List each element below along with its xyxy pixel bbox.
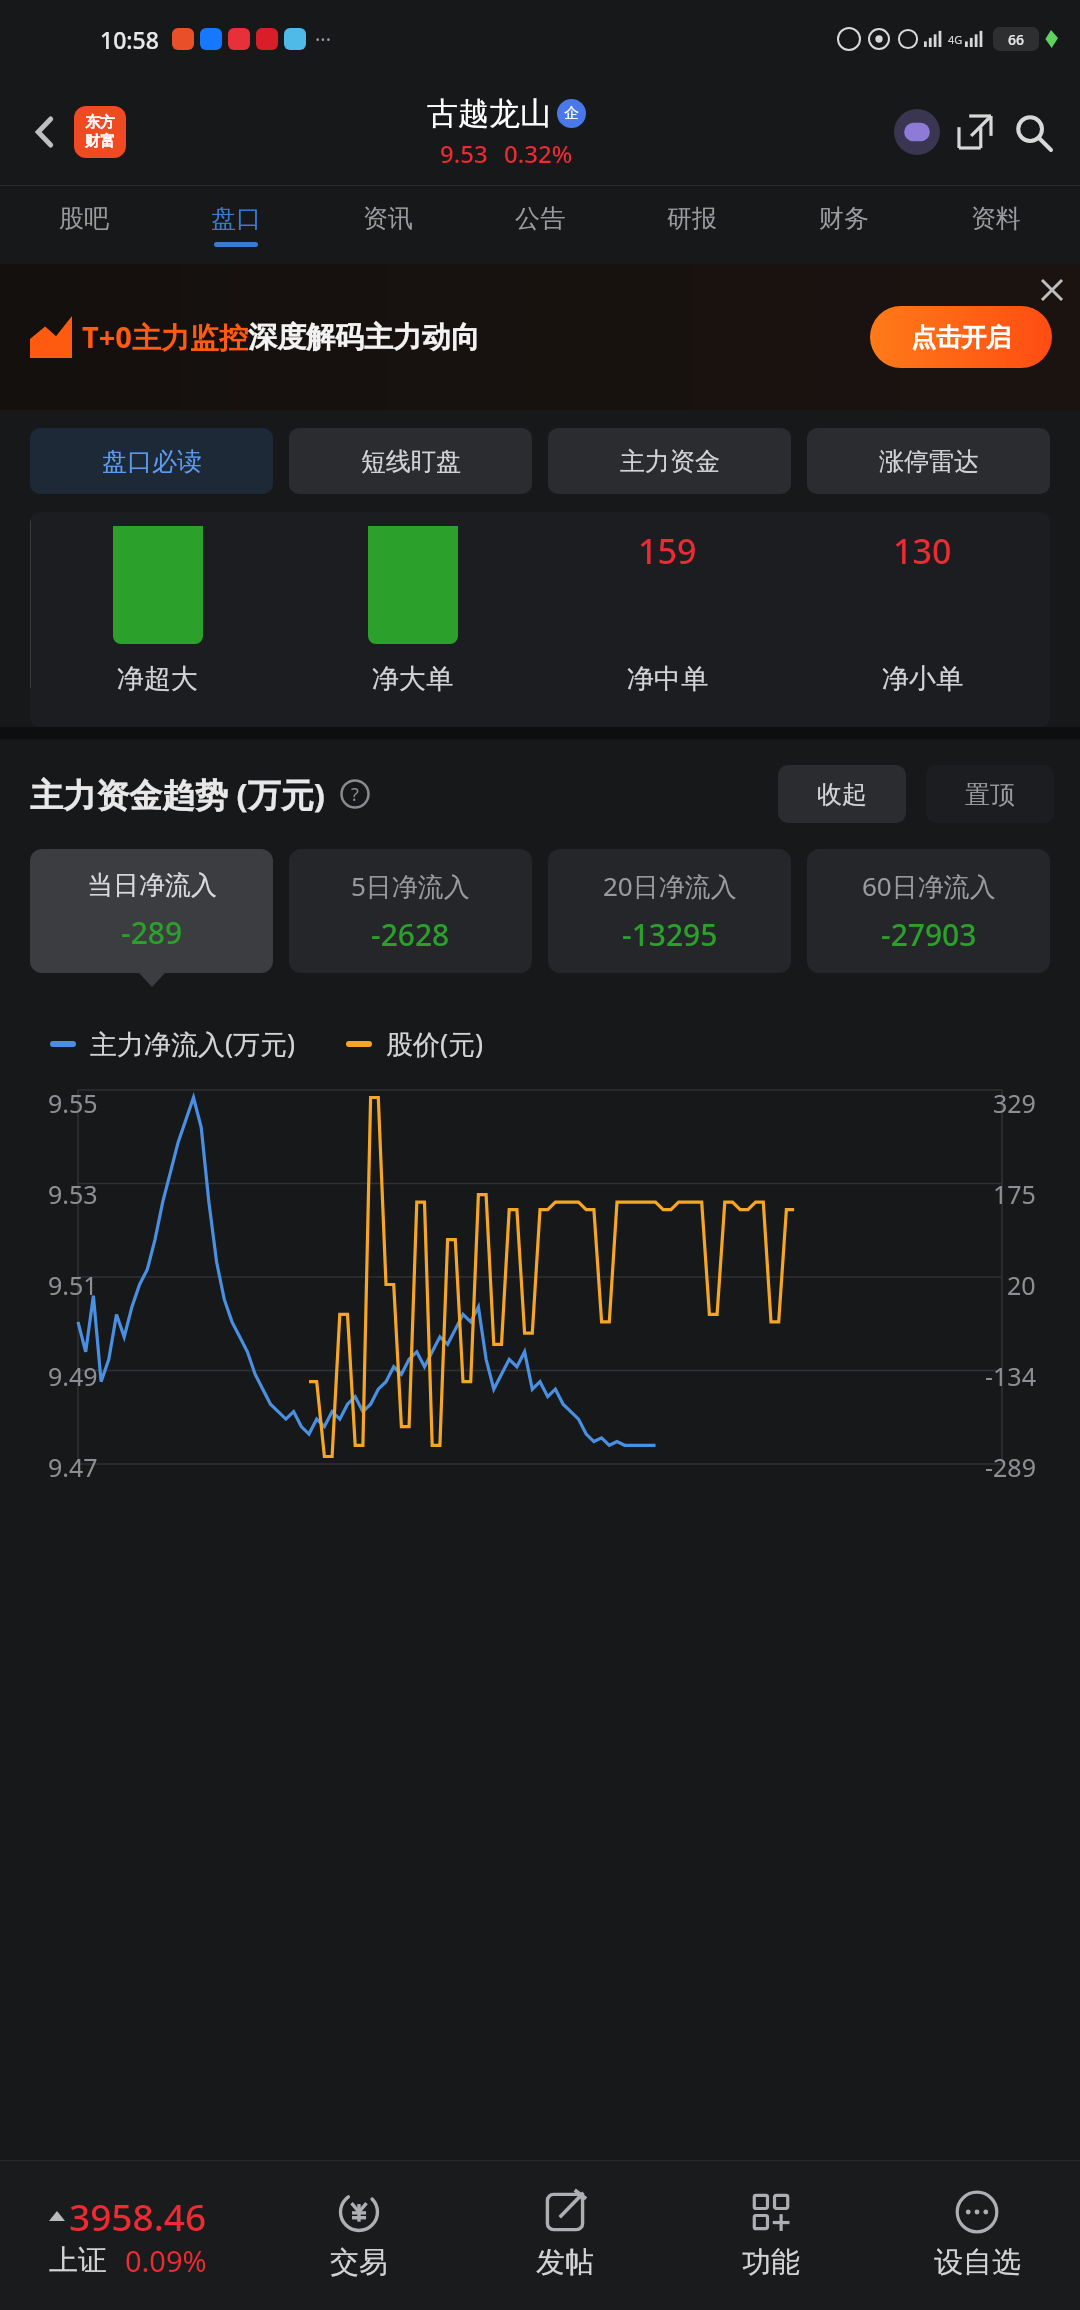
staticText: 发帖 <box>536 2244 594 2281</box>
staticText: -289 <box>121 912 183 953</box>
staticText: 股吧 <box>59 203 109 234</box>
button[interactable]: 涨停雷达 <box>807 428 1050 494</box>
staticText: 资料 <box>971 203 1021 234</box>
staticText: 古越龙山 <box>427 94 551 133</box>
staticText: 175 <box>993 1177 1036 1211</box>
staticText: 当日净流入 <box>87 869 217 902</box>
staticText: T+0主力监控 <box>82 317 248 357</box>
button[interactable]: Help <box>337 776 373 812</box>
staticText: 功能 <box>742 2244 800 2281</box>
staticText: 盘口 <box>211 203 261 234</box>
staticText: 收起 <box>817 779 867 810</box>
staticText: 交易 <box>330 2244 388 2281</box>
staticText: 9.53 <box>48 1177 98 1211</box>
button[interactable]: 当日净流入 <box>30 849 273 973</box>
button[interactable]: 20日净流入 <box>548 849 791 973</box>
staticText: 置顶 <box>965 779 1015 810</box>
staticText: 66 <box>1008 30 1025 49</box>
staticText: 涨停雷达 <box>879 446 979 477</box>
staticText: 财务 <box>819 203 869 234</box>
button[interactable]: 主力资金 <box>548 428 791 494</box>
button[interactable]: 设自选 <box>874 2160 1080 2310</box>
staticText: 净超大 <box>117 662 198 696</box>
staticText: 股价(元) <box>386 1025 484 1062</box>
staticText: 3958.46 <box>69 2191 207 2241</box>
staticText: 净中单 <box>627 662 708 696</box>
staticText: -2628 <box>371 914 450 955</box>
staticText: -289 <box>985 1450 1036 1484</box>
button[interactable]: 点击开启 <box>870 306 1052 368</box>
button[interactable]: 5日净流入 <box>289 849 532 973</box>
button[interactable]: 60日净流入 <box>807 849 1050 973</box>
staticText: 上证 <box>49 2242 107 2279</box>
staticText: 财富 <box>85 132 115 151</box>
button[interactable]: 短线盯盘 <box>289 428 532 494</box>
staticText: 主力净流入(万元) <box>90 1025 296 1062</box>
staticText: 329 <box>993 1086 1036 1120</box>
button[interactable]: 研报 <box>616 186 768 264</box>
staticText: 盘口必读 <box>102 446 202 477</box>
staticText: 0.32% <box>504 137 573 170</box>
staticText: 资讯 <box>363 203 413 234</box>
staticText: 159 <box>638 528 697 574</box>
button[interactable]: 交易 <box>256 2160 462 2310</box>
button[interactable]: 盘口 <box>160 186 312 264</box>
button[interactable]: 功能 <box>668 2160 874 2310</box>
staticText: 深度解码主力动向 <box>248 319 480 356</box>
button[interactable]: 发帖 <box>462 2160 668 2310</box>
staticText: 0.09% <box>125 2241 207 2280</box>
button[interactable]: AI助手 <box>888 103 946 161</box>
staticText: 4G <box>948 32 963 47</box>
button[interactable]: 置顶 <box>926 765 1054 823</box>
staticText: ? <box>351 782 359 807</box>
staticText: 研报 <box>667 203 717 234</box>
button[interactable]: 盘口必读 <box>30 428 273 494</box>
staticText: 主力资金趋势 (万元) <box>30 772 325 817</box>
staticText: 60日净流入 <box>862 868 996 904</box>
staticText: 20 <box>1007 1268 1036 1302</box>
staticText: 企 <box>564 104 579 123</box>
staticText: 130 <box>893 528 952 574</box>
staticText: 9.47 <box>48 1450 98 1484</box>
button[interactable]: Search <box>1004 103 1062 161</box>
staticText: 9.53 <box>440 137 488 170</box>
staticText: -27903 <box>881 914 977 955</box>
staticText: 短线盯盘 <box>361 446 461 477</box>
staticText: ··· <box>315 26 332 53</box>
staticText: 9.51 <box>48 1268 98 1302</box>
staticText: 10:58 <box>100 24 159 55</box>
staticText: 公告 <box>515 203 565 234</box>
staticText: 净大单 <box>372 662 453 696</box>
button[interactable]: Close <box>1034 272 1070 308</box>
button[interactable]: Share <box>946 103 1004 161</box>
button[interactable]: 资料 <box>920 186 1072 264</box>
button[interactable]: 东方财富 <box>74 106 126 158</box>
button[interactable]: 财务 <box>768 186 920 264</box>
staticText: 东方 <box>85 113 115 132</box>
button[interactable]: 资讯 <box>312 186 464 264</box>
staticText: 5日净流入 <box>351 868 470 904</box>
button[interactable]: 收起 <box>778 765 906 823</box>
staticText: 9.55 <box>48 1086 98 1120</box>
button[interactable]: 公告 <box>464 186 616 264</box>
button[interactable]: Back <box>18 104 74 160</box>
staticText: 主力资金 <box>620 446 720 477</box>
staticText: 20日净流入 <box>603 868 737 904</box>
staticText: 点击开启 <box>911 322 1011 353</box>
staticText: 净小单 <box>882 662 963 696</box>
staticText: -134 <box>985 1359 1036 1393</box>
staticText: 设自选 <box>934 2244 1021 2281</box>
staticText: -13295 <box>622 914 718 955</box>
staticText: 9.49 <box>48 1359 98 1393</box>
button[interactable]: 3958.46 <box>0 2160 256 2310</box>
button[interactable]: 股吧 <box>8 186 160 264</box>
